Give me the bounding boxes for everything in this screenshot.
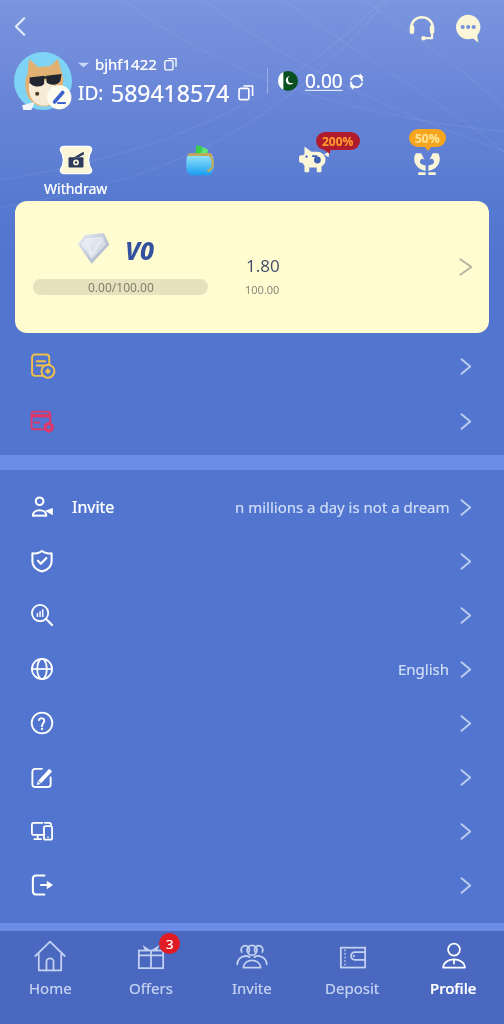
staticText: Home — [29, 978, 72, 998]
staticText: ID: — [78, 80, 104, 106]
staticText: 3 — [166, 935, 174, 953]
staticText: 1.80 — [246, 254, 280, 277]
button[interactable]: Profile — [403, 931, 504, 998]
button[interactable]: 200% — [264, 132, 364, 176]
staticText: Profile — [430, 978, 477, 998]
staticText: bjhf1422 — [95, 54, 157, 74]
button[interactable]: Invite — [201, 931, 302, 998]
staticText: 100.00 — [245, 282, 280, 297]
staticText: Invite — [232, 978, 272, 998]
button[interactable]: 3 — [100, 931, 201, 998]
staticText: Invite — [72, 496, 115, 518]
button[interactable]: English — [0, 642, 504, 696]
button[interactable]: Menu item — [0, 750, 504, 804]
button[interactable]: Back — [0, 6, 40, 46]
button[interactable]: VIP level — [15, 201, 489, 333]
button[interactable]: Menu item — [0, 804, 504, 858]
staticText: 589418574 — [111, 77, 230, 108]
staticText: 0.00 — [305, 68, 343, 94]
button[interactable]: Menu item — [0, 394, 504, 448]
staticText: 200% — [322, 133, 354, 149]
button[interactable]: Avatar — [14, 52, 72, 110]
staticText: 50% — [415, 130, 440, 146]
button[interactable]: Customer support — [404, 8, 440, 44]
button[interactable]: Action — [150, 132, 250, 176]
staticText: 0.00/100.00 — [88, 279, 154, 295]
button[interactable]: Menu item — [0, 339, 504, 393]
button[interactable]: Menu item — [0, 858, 504, 912]
staticText: n millions a day is not a dream — [235, 497, 450, 517]
staticText: Withdraw — [44, 179, 108, 198]
button[interactable]: Home — [0, 931, 100, 998]
button[interactable]: Withdraw — [26, 132, 126, 198]
button[interactable]: Balance — [278, 68, 365, 94]
staticText: V0 — [125, 233, 155, 267]
staticText: English — [398, 659, 450, 679]
button[interactable]: Menu item — [0, 696, 504, 750]
staticText: Offers — [129, 978, 173, 998]
staticText: Deposit — [325, 978, 380, 998]
button[interactable]: Messages — [450, 8, 486, 44]
button[interactable]: Menu item — [0, 534, 504, 588]
button[interactable]: 50% — [377, 132, 477, 176]
button[interactable]: Menu item — [0, 588, 504, 642]
button[interactable]: Invite — [0, 480, 504, 534]
button[interactable]: Deposit — [302, 931, 403, 998]
